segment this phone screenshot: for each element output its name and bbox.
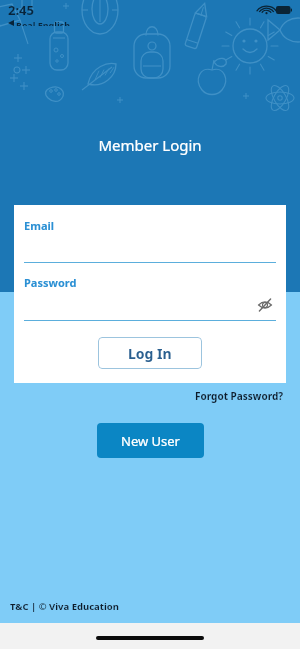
staticText: Password bbox=[24, 275, 77, 290]
button[interactable]: New User bbox=[97, 423, 204, 458]
button[interactable]: Log In bbox=[98, 337, 202, 369]
staticText: T&C | © Viva Education bbox=[10, 600, 119, 613]
button[interactable]: T&C | © Viva Education bbox=[10, 600, 119, 613]
staticText: Member Login bbox=[98, 135, 202, 155]
staticText: 2:45 bbox=[8, 1, 34, 19]
staticText: Real English bbox=[16, 19, 71, 26]
staticText: Log In bbox=[128, 344, 172, 363]
button[interactable]: Show password bbox=[254, 294, 276, 316]
staticText: Email bbox=[24, 218, 55, 233]
button[interactable]: Forgot Password? bbox=[193, 387, 286, 405]
staticText: New User bbox=[121, 432, 180, 450]
staticText: Forgot Password? bbox=[195, 389, 284, 403]
